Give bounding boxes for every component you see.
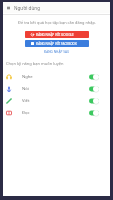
button[interactable]: Toggle	[89, 98, 99, 104]
staticText: Chọn kỹ năng bạn muốn luyện	[6, 61, 64, 66]
staticText: ĐĂNG NHẬP VỚI GOOGLE	[36, 33, 74, 37]
staticText: ĐĂNG NHẬP VỚI FACEBOOK	[36, 42, 77, 46]
staticText: Nghe	[22, 74, 33, 80]
button[interactable]: Nghe	[3, 71, 110, 83]
button[interactable]: Nói	[3, 83, 110, 95]
button[interactable]: Toggle	[89, 74, 99, 80]
button[interactable]: ĐĂNG NHẬP VỚI FACEBOOK	[25, 40, 89, 47]
staticText: ĐĂNG NHẬP SAU	[44, 50, 70, 54]
staticText: Viết	[22, 98, 30, 104]
button[interactable]: Menu	[3, 2, 14, 13]
button[interactable]: ĐĂNG NHẬP SAU	[42, 49, 72, 55]
staticText: Người dùng	[14, 5, 40, 11]
button[interactable]: Đọc	[3, 107, 110, 119]
button[interactable]: ĐĂNG NHẬP VỚI GOOGLE	[25, 31, 89, 38]
button[interactable]: Toggle	[89, 110, 99, 116]
staticText: Nói	[22, 86, 29, 92]
button[interactable]: Toggle	[89, 86, 99, 92]
staticText: Để tra kết quả học tập bạn cần đăng nhập…	[18, 20, 96, 25]
staticText: Đọc	[22, 110, 30, 116]
button[interactable]: Viết	[3, 95, 110, 107]
